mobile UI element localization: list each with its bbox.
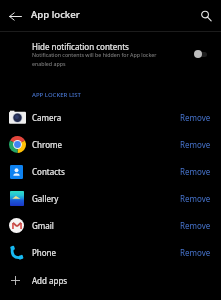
staticText: Remove (180, 193, 211, 204)
staticText: Remove (180, 220, 211, 231)
button[interactable]: Phone (0, 239, 221, 266)
button[interactable]: Back (1, 2, 29, 30)
staticText: Hide notification contents (32, 41, 129, 52)
button[interactable]: Gmail (0, 212, 221, 239)
button[interactable]: Camera (0, 104, 221, 131)
staticText: Gmail (32, 220, 54, 231)
button[interactable]: Contacts (0, 158, 221, 185)
staticText: App locker (31, 8, 80, 21)
staticText: Phone (32, 247, 57, 258)
staticText: Chrome (32, 139, 62, 150)
button[interactable]: Gallery (0, 185, 221, 212)
staticText: Contacts (32, 166, 65, 177)
staticText: Gallery (32, 193, 59, 204)
staticText: Remove (180, 166, 211, 177)
button[interactable]: Chrome (0, 131, 221, 158)
staticText: Remove (180, 247, 211, 258)
button[interactable]: Hide notification contents (0, 34, 221, 72)
staticText: Remove (180, 139, 211, 150)
staticText: APP LOCKER LIST (32, 91, 81, 99)
staticText: Add apps (32, 275, 68, 286)
staticText: Camera (32, 112, 62, 123)
button[interactable]: Search (192, 2, 220, 30)
staticText: Notification contents will be hidden for… (32, 51, 157, 68)
staticText: Remove (180, 112, 211, 123)
button[interactable]: Add apps (0, 266, 221, 294)
